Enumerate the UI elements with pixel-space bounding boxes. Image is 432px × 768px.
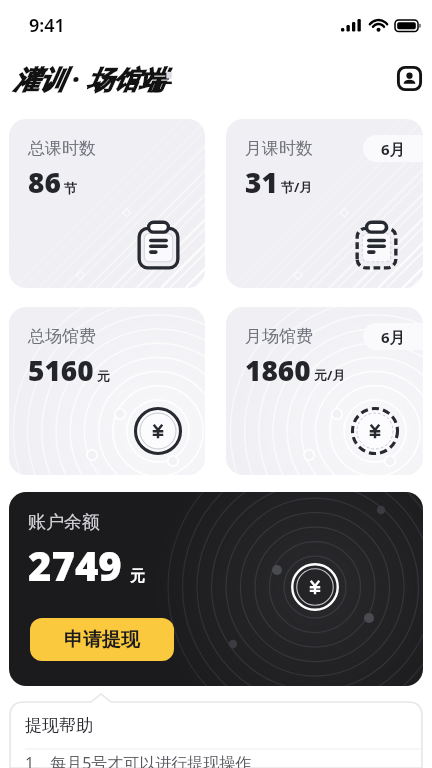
staticText: 节: [64, 180, 77, 196]
button[interactable]: 总课时数: [9, 119, 205, 288]
staticText: 9:41: [29, 13, 65, 38]
staticText: 31: [245, 163, 278, 201]
staticText: 元/月: [314, 366, 346, 384]
staticText: 2749: [28, 538, 122, 592]
button[interactable]: 6月: [363, 323, 423, 350]
staticText: 1860: [245, 351, 311, 389]
button[interactable]: 月场馆费: [226, 307, 423, 475]
button[interactable]: 申请提现: [30, 618, 174, 661]
staticText: 6月: [381, 139, 405, 159]
staticText: 账户余额: [28, 511, 100, 534]
staticText: 86: [28, 163, 61, 201]
staticText: 灌训 · 场馆端: [13, 61, 165, 97]
staticText: 节/月: [281, 178, 313, 196]
staticText: 申请提现: [64, 628, 140, 652]
staticText: 1、每月5号才可以进行提现操作: [25, 752, 252, 768]
button[interactable]: 月课时数: [226, 119, 423, 288]
staticText: 元: [97, 368, 110, 384]
staticText: 总场馆费: [28, 326, 96, 347]
button[interactable]: 总场馆费: [9, 307, 205, 475]
button[interactable]: 6月: [363, 135, 423, 162]
staticText: 6月: [381, 327, 405, 347]
staticText: 元: [130, 567, 145, 586]
staticText: 月场馆费: [245, 326, 313, 347]
staticText: 5160: [28, 351, 94, 389]
staticText: 月课时数: [245, 138, 313, 159]
staticText: 总课时数: [28, 138, 96, 159]
staticText: 提现帮助: [25, 715, 93, 736]
button[interactable]: Account: [397, 66, 422, 91]
